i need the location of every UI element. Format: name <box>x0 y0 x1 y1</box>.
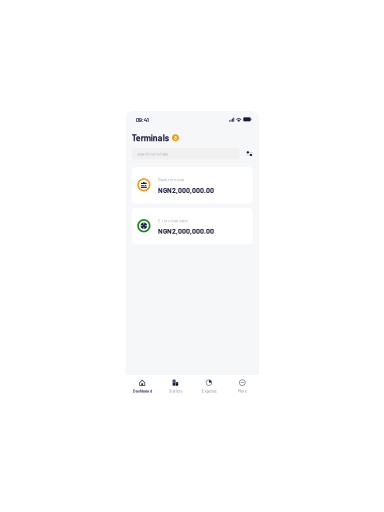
staticText: 09:41 <box>136 116 149 123</box>
button[interactable]: Dashboard <box>125 375 159 397</box>
staticText: Terminals <box>132 132 169 143</box>
button[interactable]: search terminals <box>132 148 240 159</box>
staticText: NGN2,000,000.00 <box>158 227 214 235</box>
staticText: search terminals <box>137 151 168 156</box>
button[interactable]: Bank terminal <box>132 167 253 203</box>
button[interactable]: Expense <box>192 375 226 397</box>
staticText: Bank terminal <box>158 177 184 182</box>
button[interactable]: Outlets <box>159 375 192 397</box>
button[interactable]: Filter and sort <box>246 148 253 159</box>
button[interactable]: More <box>226 375 259 397</box>
staticText: Dashboard <box>133 388 152 393</box>
staticText: Outlets <box>169 388 183 393</box>
staticText: NGN2,000,000.00 <box>158 186 214 194</box>
staticText: More <box>238 388 247 393</box>
staticText: Expense <box>201 388 216 393</box>
button[interactable]: E terminal sales <box>132 208 253 244</box>
staticText: E terminal sales <box>158 218 188 223</box>
staticText: 3 <box>174 134 177 141</box>
